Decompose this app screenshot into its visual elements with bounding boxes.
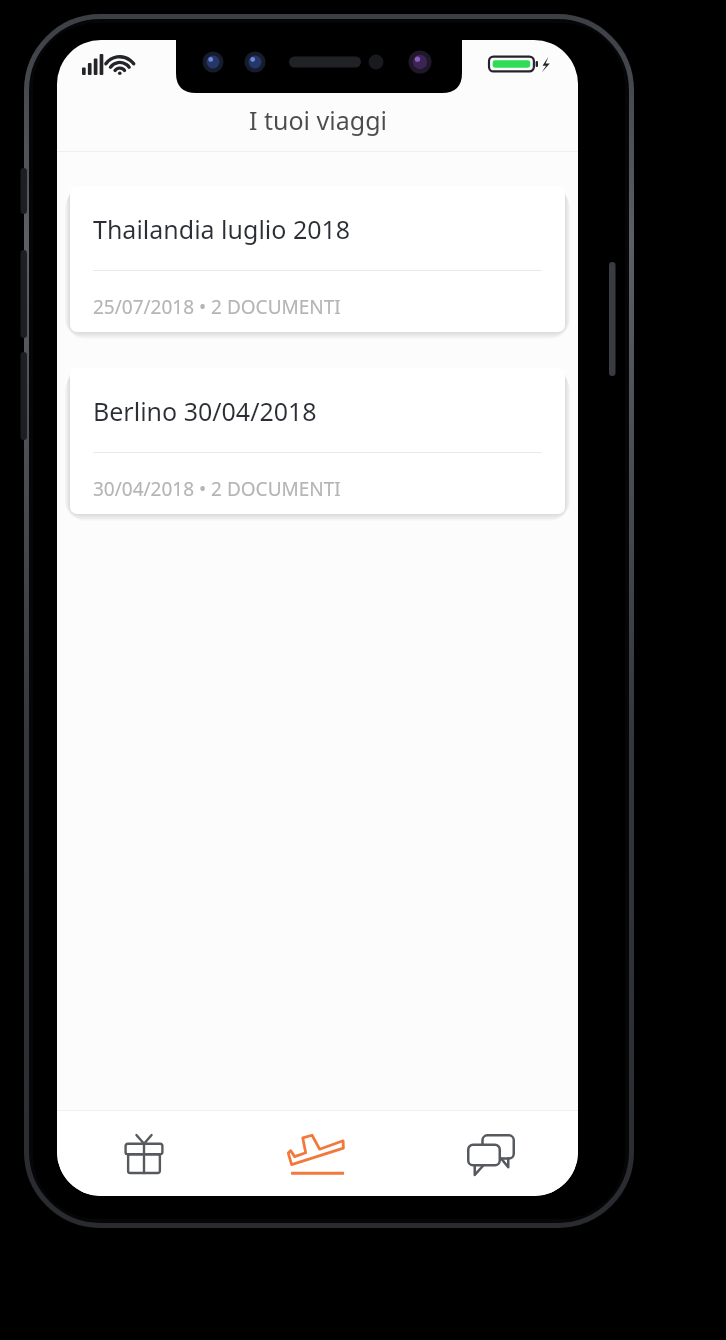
staticText: I tuoi viaggi [249, 103, 387, 137]
button[interactable]: I tuoi viaggi [230, 1111, 404, 1196]
staticText: Berlino 30/04/2018 [93, 394, 317, 428]
button[interactable]: Thailandia luglio 2018 [70, 186, 565, 332]
staticText: 25/07/2018 • 2 DOCUMENTI [93, 294, 341, 320]
staticText: Thailandia luglio 2018 [93, 212, 351, 246]
button[interactable]: Berlino 30/04/2018 [70, 368, 565, 514]
button[interactable]: Messaggi [404, 1111, 578, 1196]
staticText: 30/04/2018 • 2 DOCUMENTI [93, 476, 341, 502]
button[interactable]: Offerte [57, 1111, 230, 1196]
